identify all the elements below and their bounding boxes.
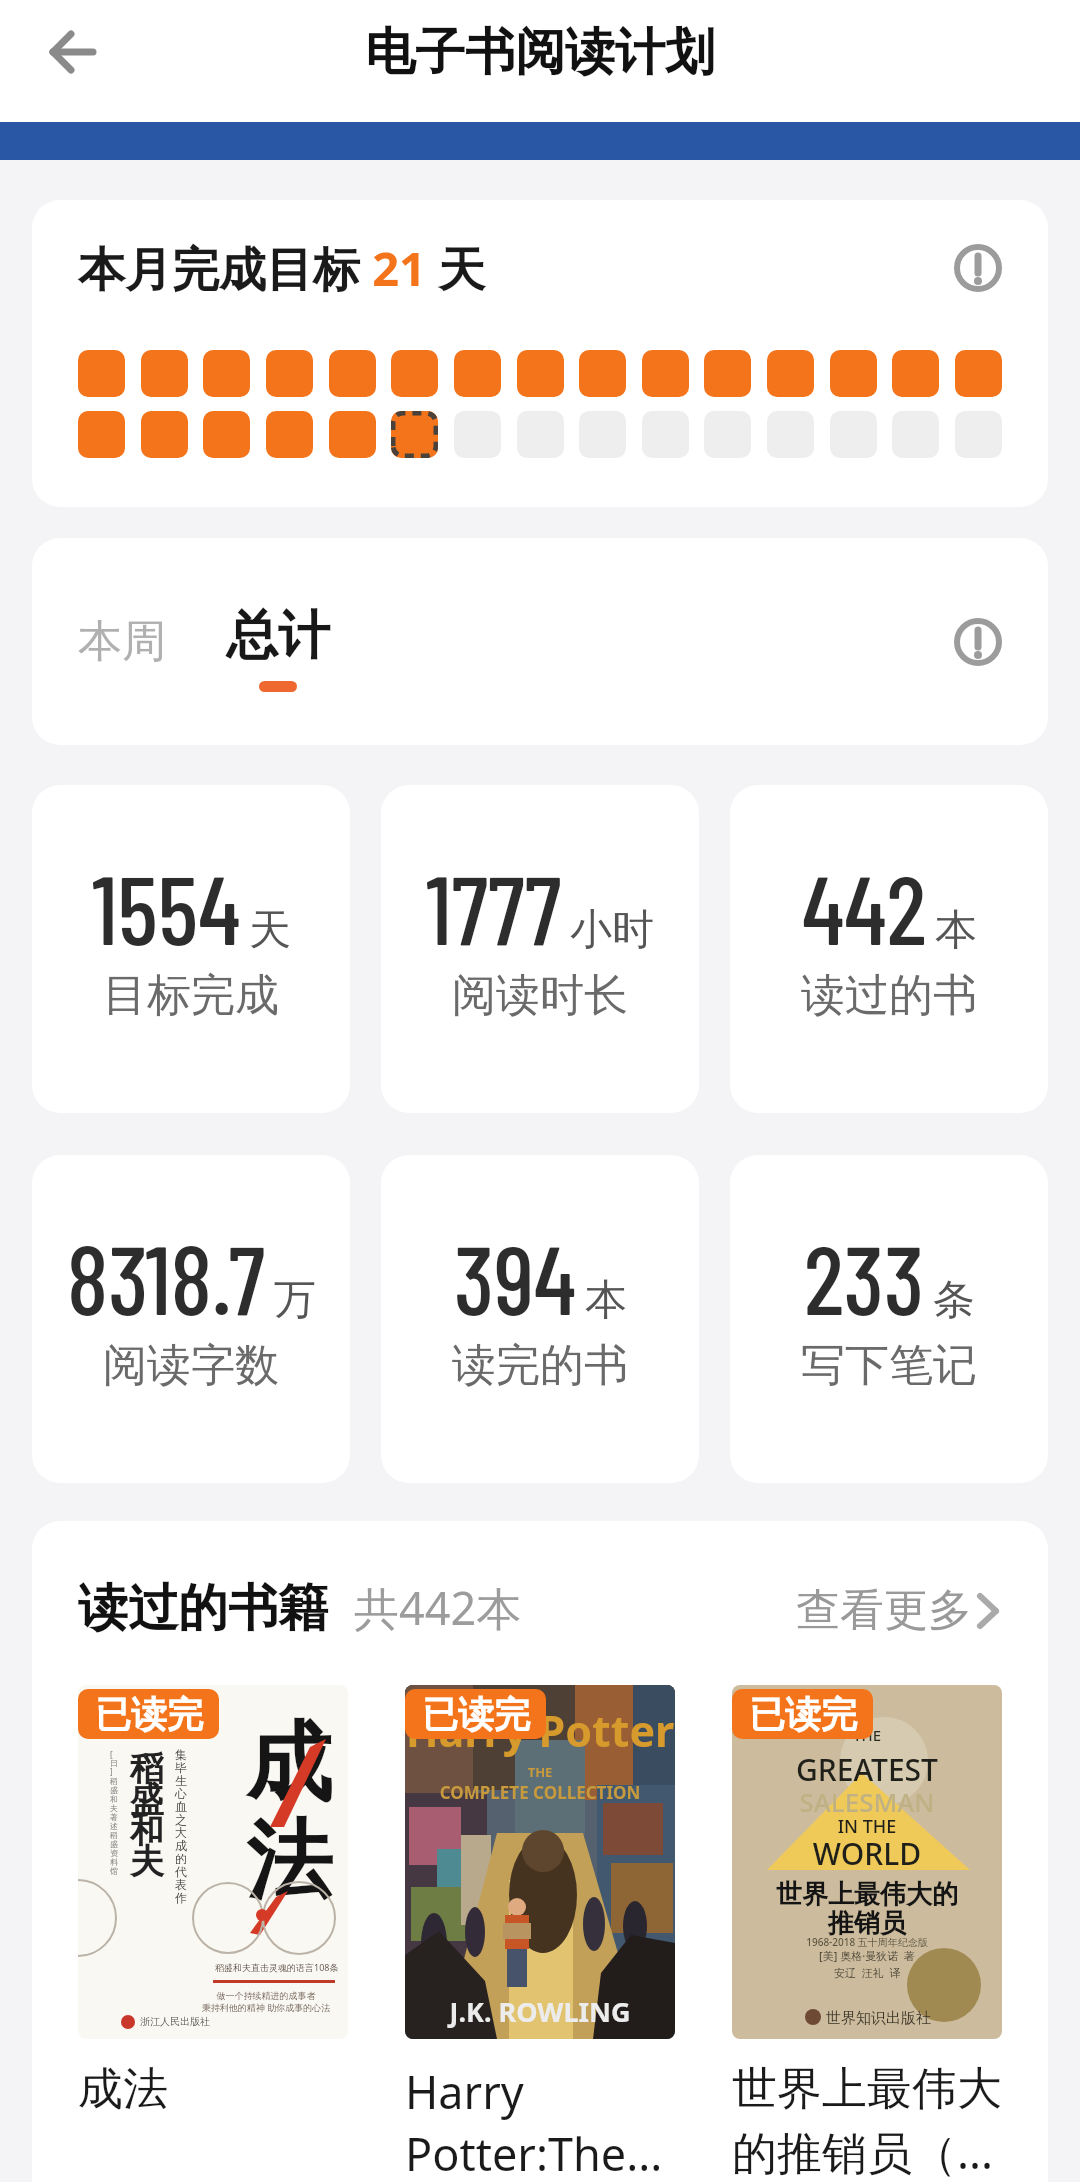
staticText: 天: [249, 904, 291, 957]
staticText: 读完的书: [452, 1338, 628, 1393]
staticText: GREATEST: [732, 1749, 1002, 1790]
staticText: 本月完成目标 21 天: [78, 236, 486, 300]
staticText: 442: [802, 849, 927, 964]
staticText: 1554: [92, 849, 241, 964]
staticText: IN THE: [732, 1814, 1002, 1839]
staticText: 成法: [78, 2061, 168, 2118]
staticText: 本: [935, 904, 977, 957]
button[interactable]: THE: [732, 1685, 1002, 2182]
staticText: 8318.7: [67, 1219, 266, 1334]
staticText: 稻盛和夫直击灵魂的语言108条: [215, 1961, 339, 1973]
staticText: 写下笔记: [801, 1338, 977, 1393]
staticText: 阅读时长: [452, 968, 628, 1023]
staticText: J.K. ROWLING: [405, 1993, 675, 2030]
staticText: THE: [405, 1763, 675, 1781]
button[interactable]: 稻 盛 和 夫: [78, 1685, 348, 2118]
button[interactable]: [954, 244, 1002, 292]
staticText: 本: [585, 1274, 627, 1327]
staticText: THE: [732, 1725, 1002, 1745]
staticText: [日]稻盛和夫 著述 稻盛资料馆: [110, 1749, 120, 1876]
staticText: 233: [804, 1219, 925, 1334]
staticText: 世界上最伟大的: [732, 1878, 1002, 1911]
staticText: 电子书阅读计划: [365, 21, 715, 84]
staticText: 已读完: [95, 1692, 203, 1737]
staticText: WORLD: [732, 1833, 1002, 1874]
staticText: 已读完: [422, 1692, 530, 1737]
staticText: [美] 奥格·曼狄诺 著: [732, 1948, 1002, 1963]
staticText: 总计: [226, 603, 330, 669]
staticText: SALESMAN: [732, 1784, 1002, 1819]
staticText: 集毕生心血之大成的代表作: [175, 1747, 189, 1905]
staticText: 读过的书: [801, 968, 977, 1023]
staticText: 世界知识出版社: [822, 2007, 931, 2027]
staticText: 条: [933, 1274, 975, 1327]
staticText: 浙江人民出版社: [140, 2015, 210, 2028]
staticText: 读过的书籍: [78, 1577, 328, 1640]
staticText: 共442本: [354, 1577, 522, 1638]
button[interactable]: 本周: [78, 614, 166, 669]
staticText: 成 法: [246, 1709, 332, 1916]
staticText: 1968-2018 五十周年纪念版: [732, 1935, 1002, 1949]
staticText: 394: [454, 1219, 577, 1334]
staticText: 已读完: [749, 1692, 857, 1737]
staticText: 查看更多: [796, 1583, 972, 1638]
button[interactable]: [954, 618, 1002, 666]
staticText: 推销员: [732, 1907, 1002, 1940]
staticText: 万: [274, 1274, 316, 1327]
staticText: 稻 盛 和 夫: [130, 1747, 164, 1883]
staticText: 做一个持续精进的成事者 秉持利他的精神 助你成事的心法: [196, 1990, 336, 2014]
staticText: 世界上最伟大 的推销员（...: [732, 2061, 1002, 2182]
button[interactable]: 查看更多: [796, 1583, 1002, 1638]
staticText: 安辽 汪礼 译: [732, 1965, 1002, 1980]
button[interactable]: [26, 0, 118, 104]
staticText: 目标完成: [103, 968, 279, 1023]
button[interactable]: Harry Potter: [405, 1685, 675, 2182]
staticText: Harry Potter: [405, 1701, 675, 1760]
staticText: Harry Potter:The...: [405, 2061, 663, 2182]
staticText: 小时: [570, 904, 654, 957]
staticText: 阅读字数: [103, 1338, 279, 1393]
staticText: 1777: [426, 849, 562, 964]
staticText: COMPLETE COLLECTION: [405, 1781, 675, 1804]
button[interactable]: 总计: [226, 603, 330, 692]
